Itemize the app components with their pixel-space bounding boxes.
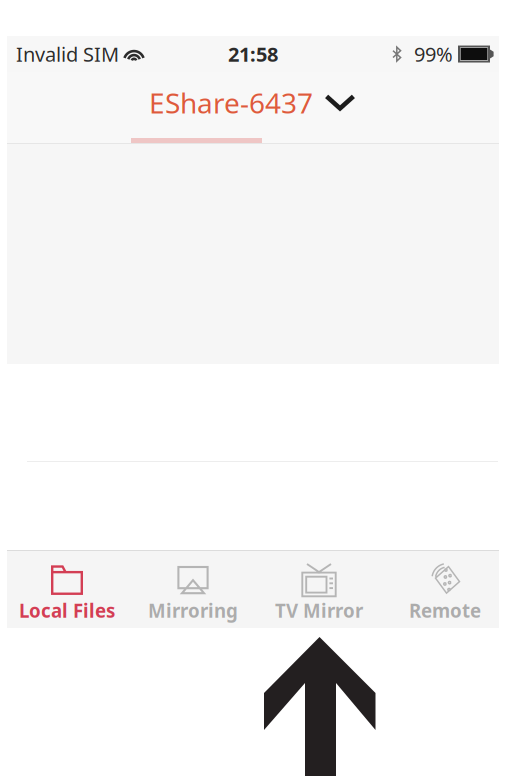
staticText: Mirroring [148,598,238,623]
staticText: 21:58 [228,41,278,67]
button[interactable]: TV Mirror [256,547,382,632]
button[interactable]: Local Files [4,547,130,632]
staticText: Local Files [19,598,115,623]
staticText: EShare-6437 [149,84,313,121]
button[interactable]: EShare-6437 [143,80,362,125]
staticText: Invalid SIM [16,41,119,67]
button[interactable]: Mirroring [130,547,256,632]
staticText: 99% [414,41,453,67]
staticText: TV Mirror [275,598,363,623]
staticText: Remote [409,598,481,623]
button[interactable]: Remote [382,547,508,632]
